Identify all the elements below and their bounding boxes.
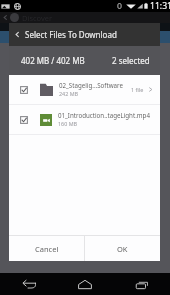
staticText: OK (117, 244, 128, 254)
staticText: 402 MB / 402 MB (21, 55, 85, 66)
staticText: 11:31 (150, 0, 170, 12)
staticText: Discover (22, 13, 53, 23)
button[interactable]: Recent apps (113, 273, 170, 295)
button[interactable]: 01_Introduction..tageLight.mp4 (9, 105, 160, 134)
staticText: 160 MB (58, 120, 78, 127)
button[interactable]: Home (56, 273, 113, 295)
button[interactable]: Back (9, 23, 25, 46)
staticText: Select Files To Download (25, 29, 117, 40)
staticText: 2 selected (112, 55, 150, 66)
button[interactable]: Cancel (9, 236, 84, 261)
staticText: Cancel (35, 244, 59, 254)
button[interactable]: 02_Stagelig...Software (9, 75, 160, 104)
staticText: 01_Introduction..tageLight.mp4 (58, 111, 150, 119)
staticText: 242 MB (59, 90, 79, 97)
button[interactable]: OK (85, 236, 160, 261)
staticText: 02_Stagelig...Software (59, 81, 123, 89)
staticText: 1 file (131, 86, 144, 93)
button[interactable]: Back (0, 273, 56, 295)
